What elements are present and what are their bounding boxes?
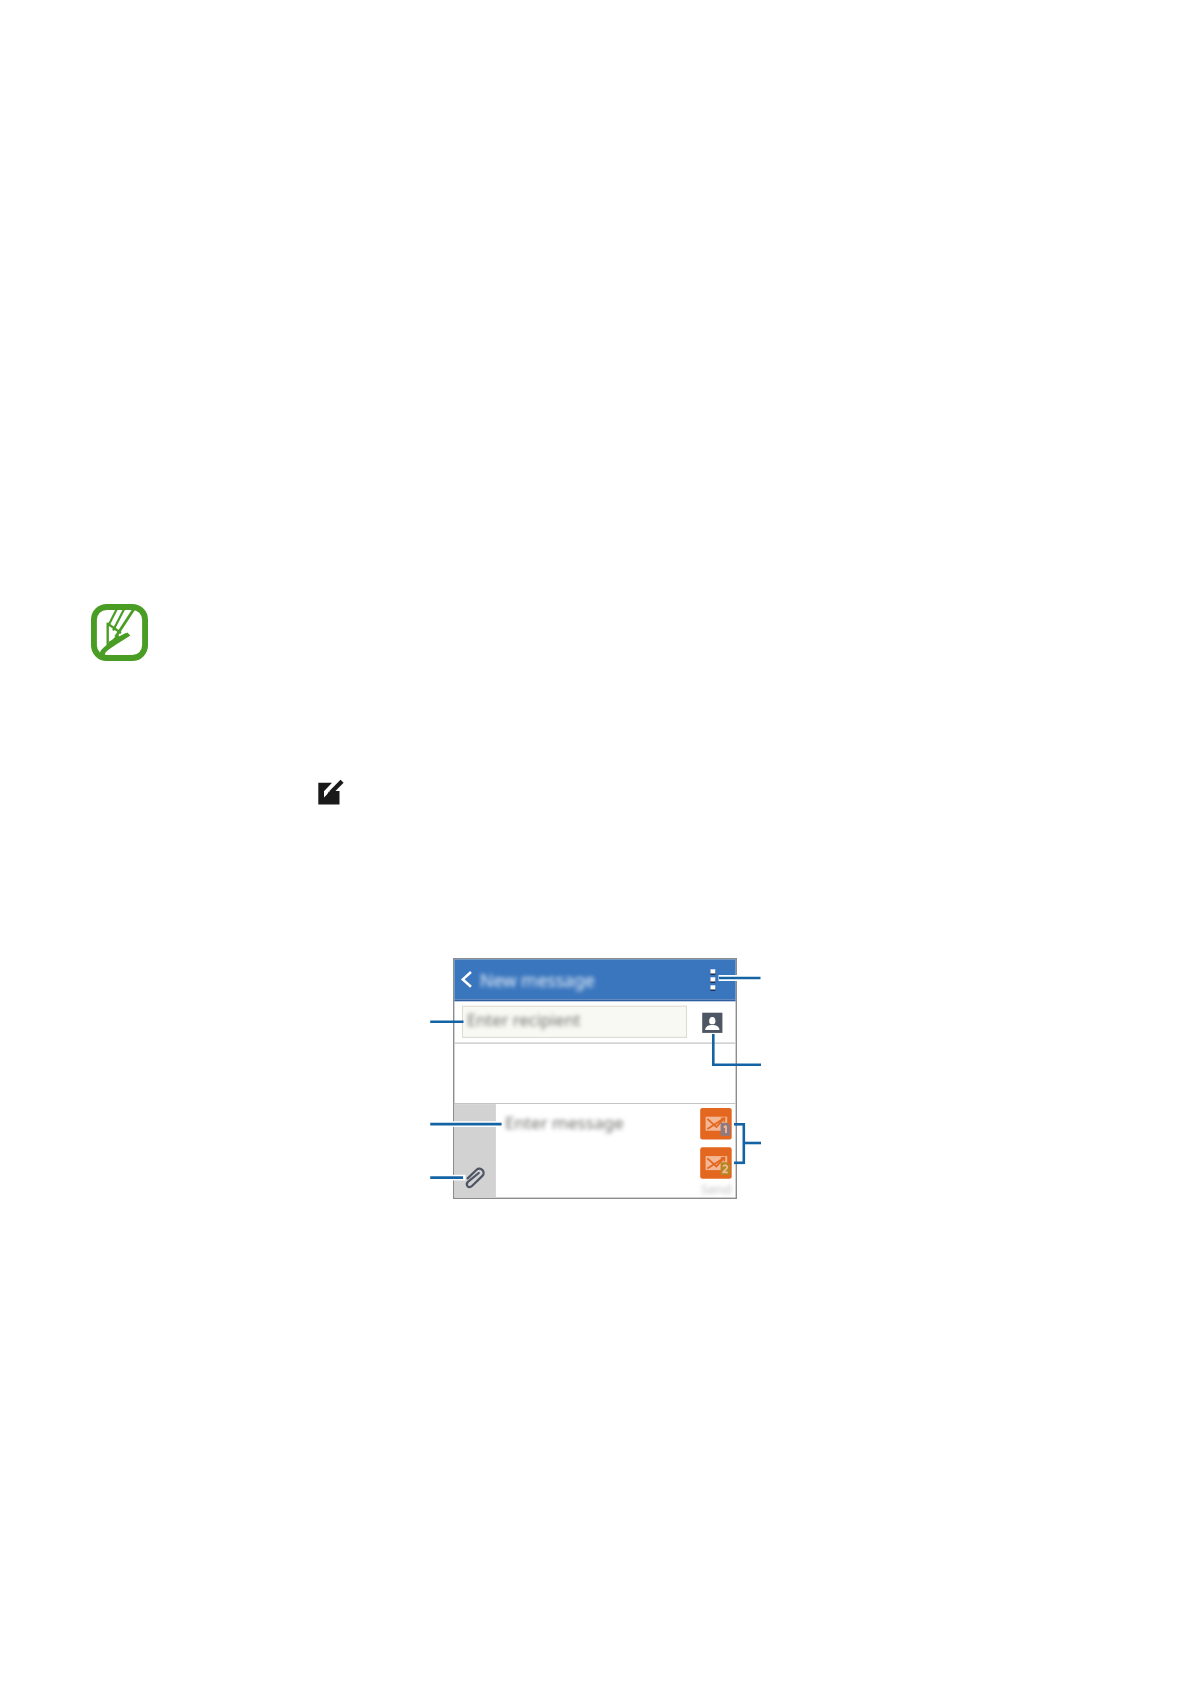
button[interactable]: S Note app icon [90, 603, 149, 662]
button[interactable]: Compose message [316, 777, 346, 807]
button[interactable]: Send with SIM 2 [699, 1147, 732, 1180]
staticText: Send [701, 1180, 732, 1198]
button[interactable]: Send with SIM 1 [699, 1107, 732, 1140]
button[interactable]: Back [454, 967, 486, 999]
staticText: Enter recipient [467, 1008, 581, 1030]
staticText: Enter message [505, 1111, 624, 1134]
button[interactable]: More options [709, 966, 735, 1000]
button[interactable]: Contacts [689, 1002, 719, 1032]
staticText: New message [480, 968, 595, 992]
button[interactable]: Attach [455, 1146, 497, 1198]
